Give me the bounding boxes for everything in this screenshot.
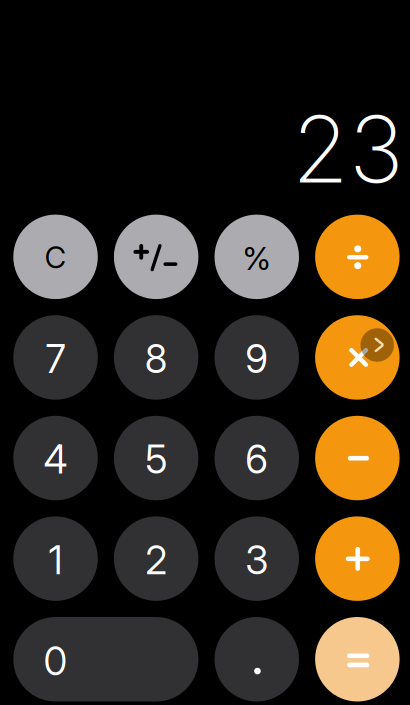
button[interactable]: 0	[13, 617, 198, 701]
button[interactable]: 8	[114, 315, 198, 400]
button[interactable]: Decimal point	[214, 617, 299, 701]
staticText: 23	[292, 93, 404, 205]
button[interactable]: 5	[114, 416, 198, 500]
button[interactable]: 2	[114, 516, 198, 601]
staticText: 5	[145, 436, 167, 483]
button[interactable]: Plus minus	[114, 215, 198, 299]
button[interactable]: 1	[13, 516, 98, 601]
button[interactable]: Minus	[315, 416, 400, 500]
button[interactable]: 9	[214, 315, 299, 400]
staticText: %	[242, 239, 271, 278]
staticText: 2	[145, 537, 167, 584]
staticText: 7	[45, 336, 65, 382]
button[interactable]: Plus	[315, 516, 400, 601]
staticText: C	[44, 239, 66, 276]
button[interactable]: Multiply	[315, 315, 400, 400]
staticText: 4	[43, 436, 67, 483]
button[interactable]: 7	[13, 315, 98, 400]
button[interactable]: 4	[13, 416, 98, 500]
button[interactable]: %	[214, 215, 299, 299]
staticText: 6	[245, 436, 268, 483]
button[interactable]: Divide	[315, 215, 400, 299]
button[interactable]: 3	[214, 516, 299, 601]
staticText: 3	[245, 537, 268, 584]
staticText: 1	[48, 537, 62, 584]
button[interactable]: Equals	[315, 617, 400, 701]
button[interactable]: 6	[214, 416, 299, 500]
staticText: 8	[145, 336, 168, 382]
staticText: 9	[245, 336, 268, 382]
staticText: 0	[43, 638, 67, 685]
button[interactable]: C	[13, 215, 98, 299]
